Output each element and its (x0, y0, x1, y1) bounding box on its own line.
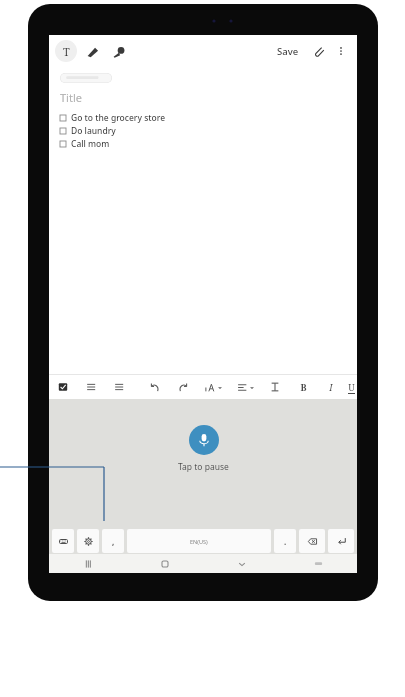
staticText: U (348, 381, 355, 393)
button[interactable]: Go to the grocery store (60, 111, 357, 124)
button[interactable]: Keyboard switcher (280, 554, 357, 573)
button[interactable]: Keyboard layout (52, 529, 74, 553)
staticText: EN(US) (190, 538, 208, 545)
button[interactable]: Text size (197, 375, 229, 399)
button[interactable]: Save (273, 41, 303, 62)
button[interactable]: Call mom (60, 137, 357, 150)
button[interactable]: Settings (77, 529, 99, 553)
button[interactable]: Text mode (55, 40, 77, 62)
button[interactable]: Alignment (229, 375, 261, 399)
staticText: Title (60, 90, 82, 105)
button[interactable]: Bullet list (77, 375, 105, 399)
staticText: T (63, 44, 70, 59)
button[interactable]: More options (331, 41, 351, 61)
button[interactable]: B (289, 375, 317, 399)
button[interactable]: EN(US) (127, 529, 271, 553)
button[interactable]: Brush (109, 41, 129, 61)
staticText: . (284, 536, 287, 547)
button[interactable]: Pen (83, 41, 103, 61)
button[interactable]: Home (126, 554, 203, 573)
button[interactable]: Recent apps (49, 554, 126, 573)
staticText: Save (277, 45, 299, 58)
staticText: Do laundry (71, 125, 116, 137)
staticText: Go to the grocery store (71, 112, 166, 124)
button[interactable]: , (102, 529, 124, 553)
button[interactable]: Do laundry (60, 124, 357, 137)
button[interactable]: Text color (261, 375, 289, 399)
staticText: Tap to pause (178, 461, 229, 473)
staticText: I (329, 381, 333, 393)
staticText: B (300, 381, 307, 393)
button[interactable]: Numbered list (105, 375, 133, 399)
button[interactable] (60, 73, 112, 83)
button[interactable]: Hide keyboard (203, 554, 280, 573)
button[interactable]: Attach (309, 41, 329, 61)
staticText: Call mom (71, 138, 110, 150)
button[interactable]: Backspace (299, 529, 325, 553)
button[interactable]: U (345, 375, 357, 399)
button[interactable]: Pause voice input (189, 425, 219, 455)
button[interactable]: Enter (328, 529, 354, 553)
button[interactable]: I (317, 375, 345, 399)
button[interactable]: Undo (141, 375, 169, 399)
button[interactable]: . (274, 529, 296, 553)
staticText: , (112, 536, 115, 547)
button[interactable]: Redo (169, 375, 197, 399)
button[interactable]: Checklist (49, 375, 77, 399)
